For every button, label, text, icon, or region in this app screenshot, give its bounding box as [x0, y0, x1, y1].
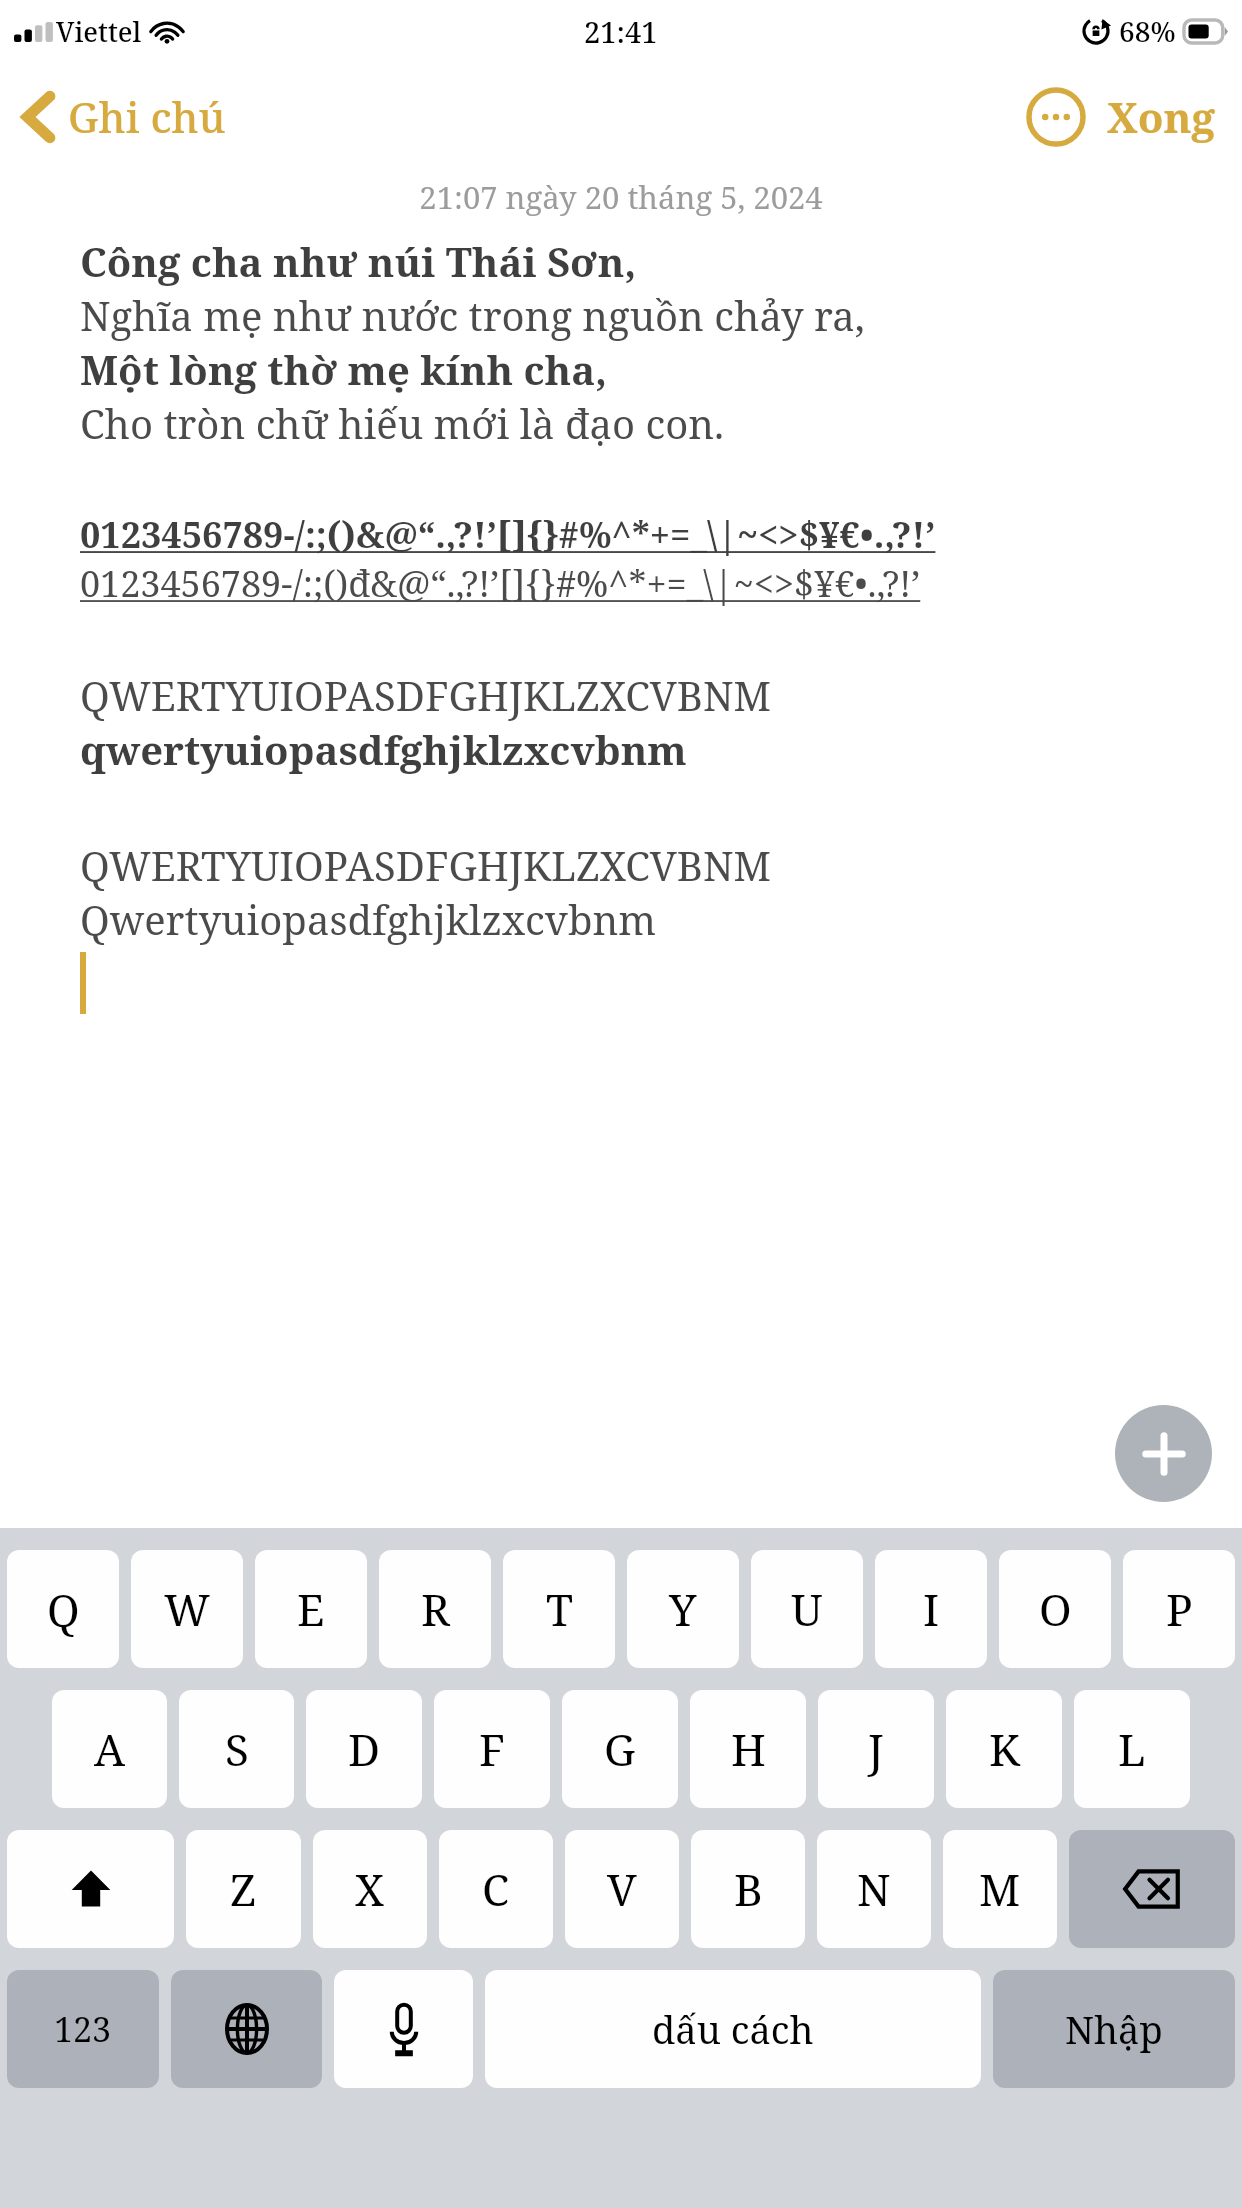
staticText: Z — [230, 1859, 257, 1919]
button[interactable]: R — [379, 1550, 491, 1668]
staticText: 0123456789-/:;()đ&@“.,?!’[]{}#%^*+=_\|~<… — [80, 559, 921, 608]
staticText: E — [297, 1579, 325, 1639]
button[interactable]: X — [313, 1830, 427, 1948]
staticText: 21:41 — [584, 12, 658, 51]
staticText: H — [731, 1719, 766, 1779]
button[interactable]: A — [52, 1690, 167, 1808]
button[interactable]: V — [565, 1830, 679, 1948]
button[interactable]: H — [690, 1690, 806, 1808]
staticText: G — [604, 1719, 636, 1779]
button[interactable]: D — [306, 1690, 422, 1808]
staticText: Công cha như núi Thái Sơn, — [80, 234, 637, 288]
button[interactable]: 123 — [7, 1970, 159, 2088]
staticText: Nhập — [1065, 2003, 1163, 2055]
staticText: dấu cách — [652, 2003, 814, 2055]
button[interactable]: E — [255, 1550, 367, 1668]
button[interactable]: dấu cách — [485, 1970, 981, 2088]
button[interactable]: Ghi chú — [22, 88, 226, 145]
staticText: A — [94, 1719, 126, 1779]
button[interactable]: Backspace — [1069, 1830, 1235, 1948]
button[interactable]: Change keyboard language — [171, 1970, 322, 2088]
staticText: W — [164, 1579, 211, 1639]
staticText: Q — [47, 1579, 80, 1639]
staticText: Xong — [1107, 88, 1216, 145]
button[interactable]: Z — [186, 1830, 301, 1948]
button[interactable]: Nhập — [993, 1970, 1235, 2088]
button[interactable]: More options — [1023, 84, 1089, 150]
button[interactable]: S — [179, 1690, 294, 1808]
staticText: 21:07 ngày 20 tháng 5, 2024 — [0, 176, 1242, 218]
button[interactable]: L — [1074, 1690, 1190, 1808]
button[interactable]: C — [439, 1830, 553, 1948]
staticText: QWERTYUIOPASDFGHJKLZXCVBNM — [80, 668, 771, 722]
staticText: K — [989, 1719, 1020, 1779]
button[interactable]: F — [434, 1690, 550, 1808]
staticText: I — [923, 1579, 940, 1639]
button[interactable]: T — [503, 1550, 615, 1668]
staticText: N — [857, 1859, 891, 1919]
staticText: Ghi chú — [68, 88, 226, 145]
staticText: X — [355, 1859, 385, 1919]
button[interactable]: Voice input — [334, 1970, 473, 2088]
button[interactable]: J — [818, 1690, 934, 1808]
button[interactable]: Xong — [1103, 82, 1220, 151]
staticText: Viettel — [56, 13, 142, 50]
button[interactable]: P — [1123, 1550, 1235, 1668]
button[interactable]: Shift — [7, 1830, 174, 1948]
staticText: T — [546, 1579, 573, 1639]
button[interactable]: O — [999, 1550, 1111, 1668]
staticText: 0123456789-/:;()&@“.,?!’[]{}#%^*+=_\|~<>… — [80, 510, 936, 559]
staticText: F — [479, 1719, 505, 1779]
button[interactable]: W — [131, 1550, 243, 1668]
staticText: S — [225, 1719, 249, 1779]
staticText: V — [607, 1859, 637, 1919]
staticText: Nghĩa mẹ như nước trong nguồn chảy ra, — [80, 288, 865, 342]
staticText: QWERTYUIOPASDFGHJKLZXCVBNM — [80, 838, 771, 892]
staticText: Một lòng thờ mẹ kính cha, — [80, 342, 607, 396]
button[interactable]: B — [691, 1830, 805, 1948]
staticText: R — [421, 1579, 450, 1639]
button[interactable]: I — [875, 1550, 987, 1668]
staticText: L — [1118, 1719, 1146, 1779]
staticText: M — [979, 1859, 1021, 1919]
staticText: 68% — [1119, 12, 1176, 50]
button[interactable]: Y — [627, 1550, 739, 1668]
button[interactable]: N — [817, 1830, 931, 1948]
staticText: U — [791, 1579, 823, 1639]
button[interactable]: K — [946, 1690, 1062, 1808]
staticText: B — [734, 1859, 763, 1919]
button[interactable]: U — [751, 1550, 863, 1668]
staticText: P — [1166, 1579, 1193, 1639]
staticText: Qwertyuiopasdfghjklzxcvbnm — [80, 892, 657, 946]
button[interactable]: Add attachment — [1115, 1405, 1212, 1502]
staticText: C — [482, 1859, 510, 1919]
staticText: O — [1039, 1579, 1072, 1639]
staticText: qwertyuiopasdfghjklzxcvbnm — [80, 722, 687, 776]
button[interactable]: M — [943, 1830, 1057, 1948]
button[interactable]: G — [562, 1690, 678, 1808]
button[interactable]: Q — [7, 1550, 119, 1668]
staticText: Y — [669, 1579, 697, 1639]
staticText: Cho tròn chữ hiếu mới là đạo con. — [80, 396, 725, 450]
staticText: J — [868, 1719, 884, 1779]
staticText: D — [348, 1719, 380, 1779]
staticText: 123 — [54, 2006, 112, 2052]
